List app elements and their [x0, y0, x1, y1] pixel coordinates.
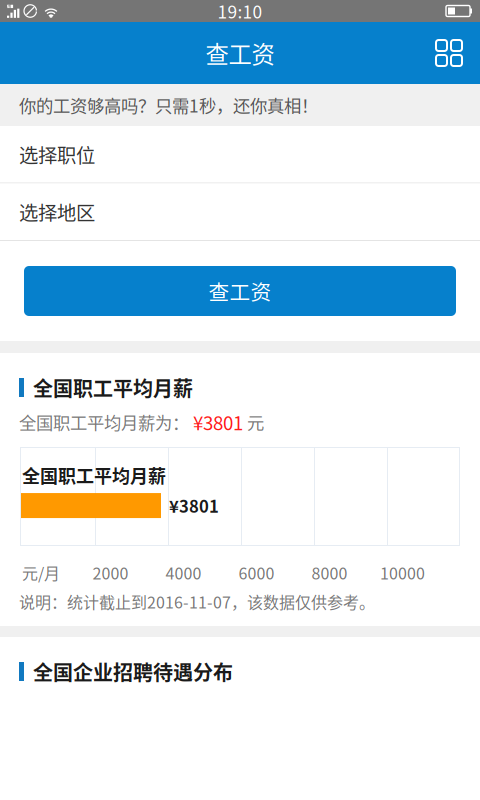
- button[interactable]: 选择职位: [0, 126, 480, 182]
- staticText: 全国企业招聘待遇分布: [33, 657, 233, 686]
- staticText: 4000: [165, 561, 201, 584]
- staticText: 10000: [380, 561, 425, 584]
- staticText: 你的工资够高吗？只需1秒，还你真相！: [19, 92, 318, 118]
- staticText: 全国职工平均月薪: [33, 373, 193, 402]
- staticText: 6000: [238, 561, 274, 584]
- staticText: 选择职位: [19, 140, 95, 168]
- staticText: 8000: [311, 561, 347, 584]
- staticText: 查工资: [208, 276, 271, 306]
- staticText: 查工资: [205, 36, 274, 70]
- staticText: 全国职工平均月薪: [22, 462, 166, 488]
- staticText: 2000: [92, 561, 128, 584]
- staticText: ¥3801: [161, 493, 219, 518]
- staticText: 全国职工平均月薪为：: [19, 409, 189, 435]
- staticText: 说明：统计截止到2016-11-07，该数据仅供参考。: [19, 590, 375, 613]
- button[interactable]: 选择地区: [0, 183, 480, 240]
- button[interactable]: 查工资: [24, 266, 456, 316]
- staticText: 19:10: [217, 0, 262, 24]
- staticText: 元: [243, 409, 264, 435]
- staticText: 元/月: [22, 561, 60, 584]
- button[interactable]: Categories: [418, 22, 480, 84]
- staticText: 选择地区: [19, 198, 95, 226]
- staticText: ¥3801: [189, 408, 243, 435]
